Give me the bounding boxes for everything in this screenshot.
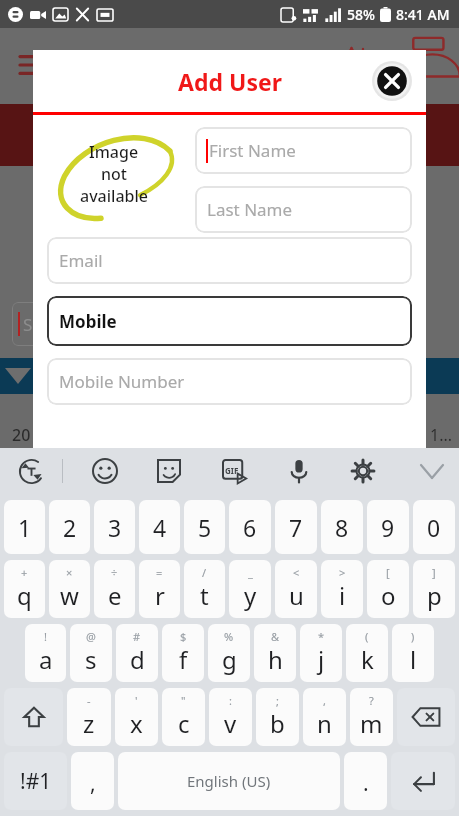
button[interactable]: ,: [303, 688, 346, 746]
staticText: 1: [18, 512, 32, 543]
button[interactable]: Keyboard settings: [340, 448, 386, 494]
staticText: _: [248, 565, 253, 580]
staticText: 58%: [347, 5, 375, 24]
button[interactable]: Backspace: [397, 688, 455, 746]
staticText: ;: [276, 693, 279, 708]
button[interactable]: ): [392, 624, 434, 682]
button[interactable]: $: [162, 624, 204, 682]
staticText: ]: [432, 565, 436, 580]
button[interactable]: >: [321, 560, 363, 618]
staticText: /: [202, 565, 207, 580]
staticText: d: [130, 643, 145, 676]
staticText: s: [85, 643, 97, 676]
staticText: 1...: [430, 424, 453, 446]
button[interactable]: Stickers: [146, 448, 192, 494]
button[interactable]: -: [67, 688, 111, 746]
staticText: available: [80, 185, 148, 207]
staticText: 0: [427, 512, 441, 543]
staticText: #: [133, 629, 141, 644]
button[interactable]: English (US): [118, 752, 340, 810]
staticText: w: [60, 579, 79, 612]
button[interactable]: _: [229, 560, 271, 618]
button[interactable]: /: [184, 560, 225, 618]
button[interactable]: 0: [413, 500, 455, 554]
staticText: ×: [66, 565, 73, 580]
button[interactable]: =: [139, 560, 180, 618]
button[interactable]: Last Name: [195, 186, 412, 233]
button[interactable]: ÷: [94, 560, 135, 618]
button[interactable]: :: [209, 688, 252, 746]
button[interactable]: 7: [275, 500, 317, 554]
button[interactable]: %: [208, 624, 250, 682]
button[interactable]: Close: [372, 61, 412, 101]
button[interactable]: ": [162, 688, 205, 746]
button[interactable]: First Name: [195, 127, 412, 174]
button[interactable]: Mobile Number: [47, 358, 412, 405]
staticText: 20: [12, 424, 31, 446]
button[interactable]: #: [116, 624, 158, 682]
button[interactable]: 6: [229, 500, 271, 554]
staticText: &: [271, 629, 280, 644]
button[interactable]: Voice input: [276, 448, 322, 494]
button[interactable]: (: [346, 624, 388, 682]
button[interactable]: ,: [71, 752, 114, 810]
button[interactable]: !#1: [4, 752, 67, 810]
button[interactable]: ': [115, 688, 158, 746]
button[interactable]: Mobile: [47, 296, 412, 346]
staticText: 6: [243, 512, 257, 543]
staticText: :: [229, 693, 232, 708]
staticText: Image: [89, 141, 139, 163]
button[interactable]: !: [25, 624, 66, 682]
button[interactable]: ×: [49, 560, 90, 618]
button[interactable]: *: [300, 624, 342, 682]
button[interactable]: Hide keyboard: [405, 448, 459, 494]
button[interactable]: .: [344, 752, 387, 810]
staticText: ': [135, 693, 138, 708]
button[interactable]: 2: [49, 500, 90, 554]
button[interactable]: Translate: [0, 448, 62, 494]
button[interactable]: 4: [139, 500, 180, 554]
staticText: Se: [23, 313, 42, 336]
button[interactable]: @: [70, 624, 112, 682]
staticText: 5: [198, 512, 212, 543]
staticText: [: [386, 565, 390, 580]
staticText: l: [410, 643, 417, 676]
staticText: (: [365, 629, 369, 644]
button[interactable]: Shift: [4, 688, 63, 746]
button[interactable]: 9: [367, 500, 409, 554]
staticText: @: [86, 629, 96, 644]
button[interactable]: GIF: [211, 448, 257, 494]
staticText: 8: [335, 512, 349, 543]
staticText: ,: [90, 769, 96, 798]
staticText: f: [179, 643, 188, 676]
staticText: e: [108, 579, 122, 612]
button[interactable]: &: [254, 624, 296, 682]
button[interactable]: +: [4, 560, 45, 618]
staticText: 4: [153, 512, 167, 543]
button[interactable]: 5: [184, 500, 225, 554]
button[interactable]: Email: [47, 237, 412, 284]
staticText: Mobile: [59, 310, 117, 333]
button[interactable]: [: [367, 560, 409, 618]
button[interactable]: 3: [94, 500, 135, 554]
staticText: Email: [59, 249, 103, 272]
staticText: .: [363, 769, 369, 798]
staticText: t: [200, 579, 209, 612]
staticText: ): [411, 629, 415, 644]
staticText: o: [381, 579, 396, 612]
staticText: ?: [369, 693, 374, 708]
button[interactable]: <: [275, 560, 317, 618]
staticText: 8:41 AM: [396, 5, 450, 24]
staticText: z: [83, 707, 95, 740]
staticText: Add User: [178, 66, 282, 97]
button[interactable]: ;: [256, 688, 299, 746]
staticText: b: [270, 707, 285, 740]
button[interactable]: Enter: [391, 752, 455, 810]
button[interactable]: ]: [413, 560, 455, 618]
staticText: English (US): [187, 771, 271, 791]
button[interactable]: 1: [4, 500, 45, 554]
button[interactable]: Emoji: [82, 448, 128, 494]
staticText: c: [178, 707, 190, 740]
button[interactable]: ?: [350, 688, 393, 746]
button[interactable]: 8: [321, 500, 363, 554]
